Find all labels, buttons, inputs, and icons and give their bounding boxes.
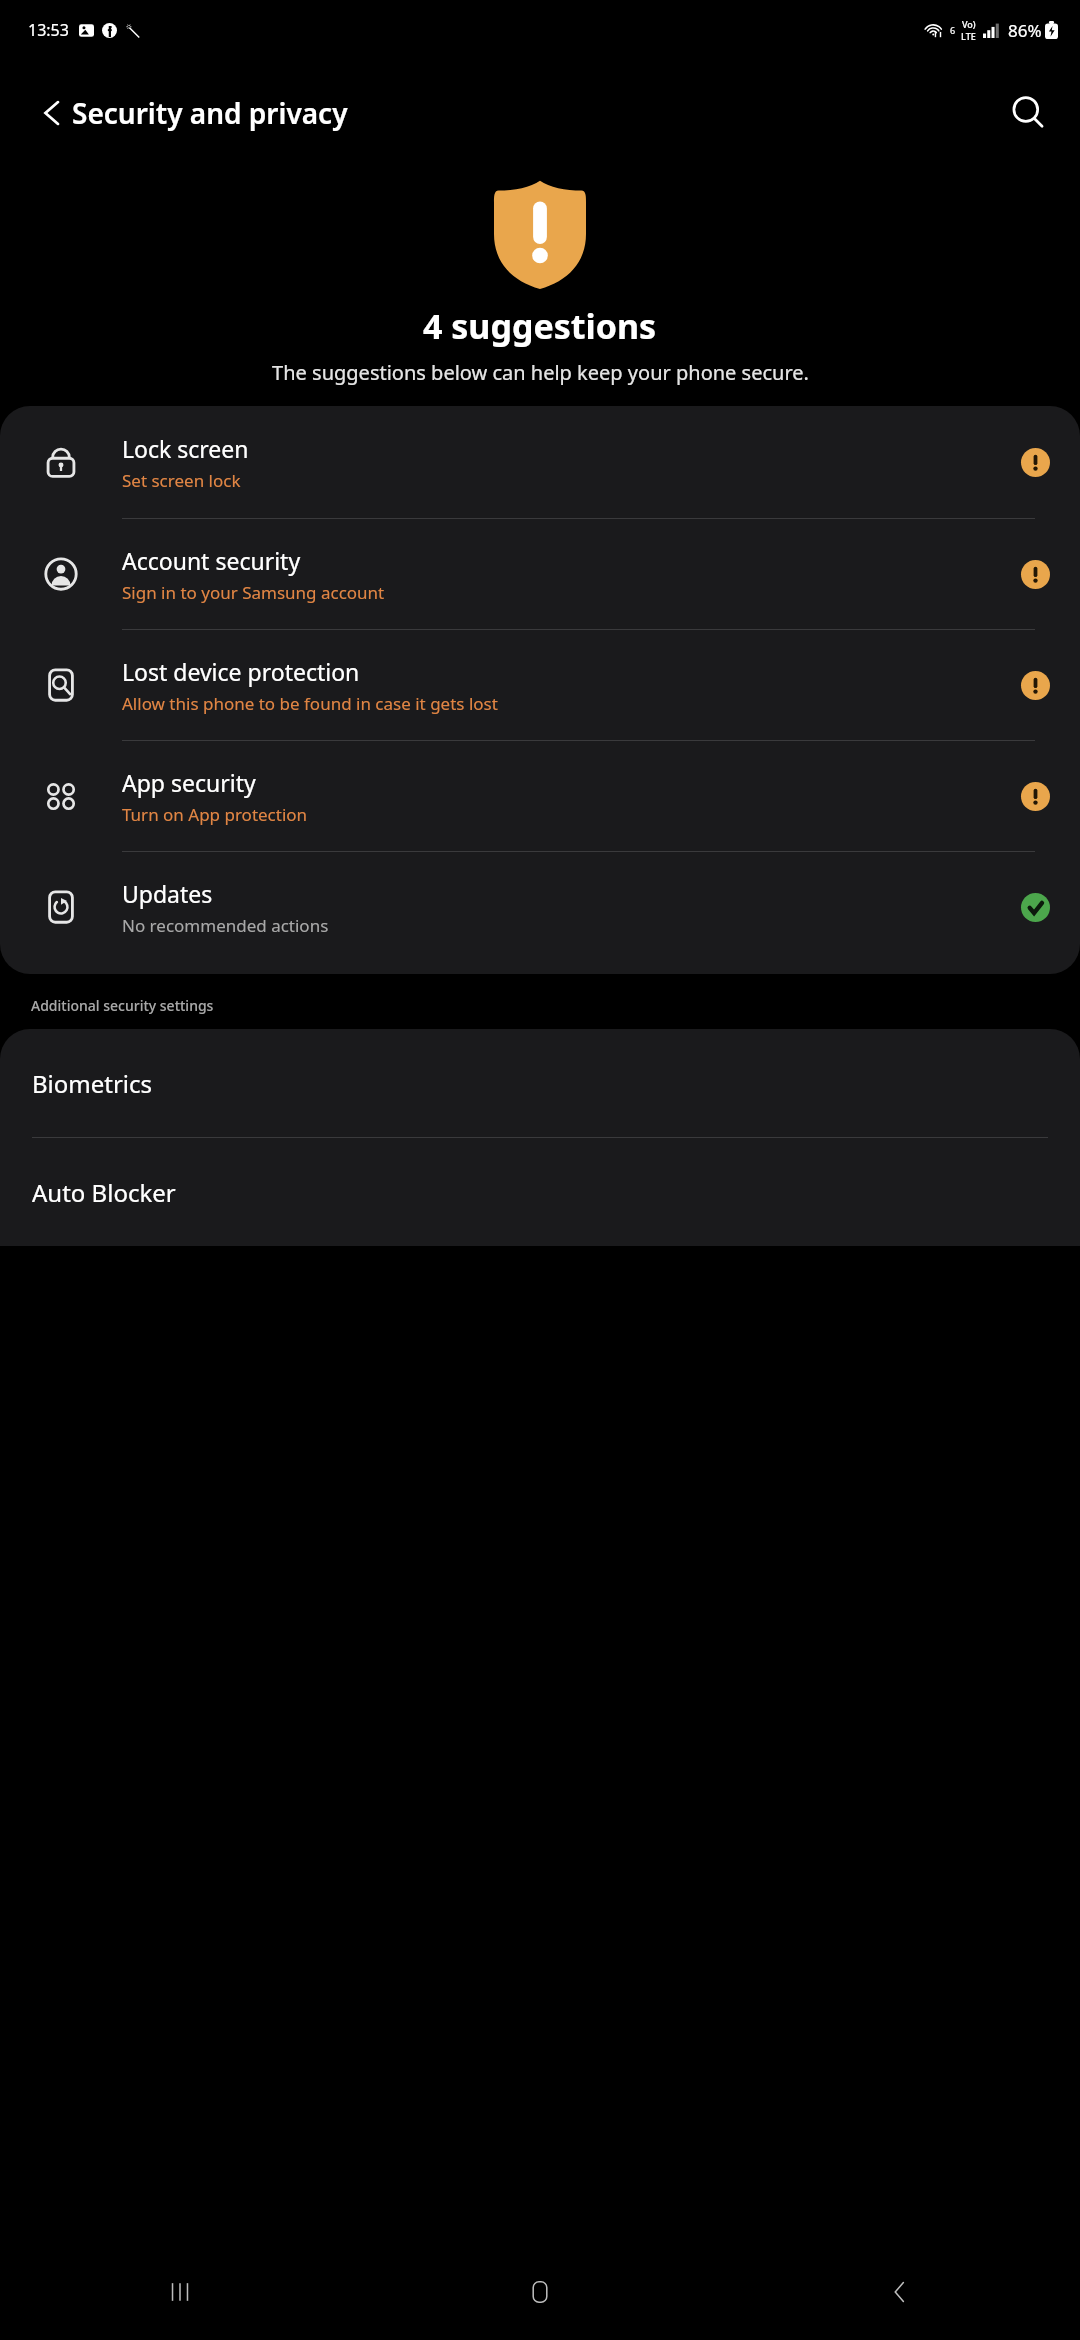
button[interactable]: Lock screen <box>0 406 1080 518</box>
button[interactable]: Auto Blocker <box>0 1138 1080 1246</box>
staticText: Updates <box>122 878 213 909</box>
staticText: Turn on App protection <box>122 803 308 826</box>
button[interactable]: Recents <box>0 2244 360 2340</box>
button[interactable]: Updates <box>0 852 1080 962</box>
button[interactable]: Search <box>1006 91 1050 135</box>
button[interactable]: App security <box>0 741 1080 851</box>
staticText: App security <box>122 767 256 798</box>
staticText: Auto Blocker <box>32 1176 176 1209</box>
button[interactable]: Back <box>720 2244 1080 2340</box>
button[interactable]: Back <box>32 92 74 134</box>
staticText: Allow this phone to be found in case it … <box>122 692 498 715</box>
button[interactable]: Account security <box>0 519 1080 629</box>
staticText: Additional security settings <box>31 996 214 1015</box>
staticText: 4 suggestions <box>423 303 657 349</box>
button[interactable]: Lost device protection <box>0 630 1080 740</box>
staticText: Sign in to your Samsung account <box>122 581 385 604</box>
staticText: LTE <box>961 30 976 42</box>
staticText: No recommended actions <box>122 914 329 937</box>
staticText: Lost device protection <box>122 656 360 687</box>
staticText: Lock screen <box>122 433 249 464</box>
staticText: 13:53 <box>28 19 69 41</box>
staticText: Biometrics <box>32 1067 153 1100</box>
staticText: Account security <box>122 545 301 576</box>
staticText: Security and privacy <box>72 94 348 132</box>
staticText: Vo) <box>962 18 976 30</box>
staticText: 6 <box>950 24 956 36</box>
staticText: Set screen lock <box>122 469 241 492</box>
staticText: 86% <box>1008 19 1042 42</box>
staticText: The suggestions below can help keep your… <box>272 359 809 386</box>
button[interactable]: Biometrics <box>0 1029 1080 1137</box>
button[interactable]: Home <box>360 2244 720 2340</box>
